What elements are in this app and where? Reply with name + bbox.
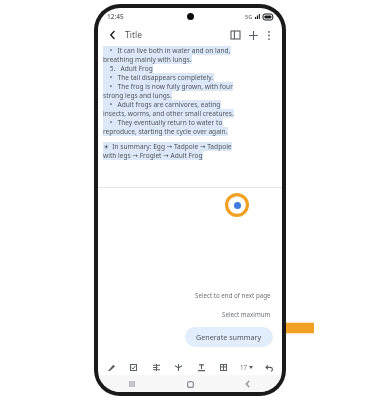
staticText: 17 [240, 363, 248, 371]
staticText: strong legs and lungs. [103, 91, 172, 100]
staticText: Generate summary [196, 332, 262, 342]
button[interactable]: Checklist [126, 360, 140, 374]
staticText: breathing mainly with lungs. [103, 55, 192, 64]
staticText: insects, worms, and other small creature… [103, 109, 234, 118]
staticText: Select to end of next page [195, 291, 271, 299]
button[interactable]: Insert [171, 360, 185, 374]
staticText: Select maximum [222, 310, 271, 318]
button[interactable]: Draw [104, 360, 118, 374]
button[interactable]: Select to end of next page [193, 289, 273, 301]
staticText: with legs → Froglet → Adult Frog [103, 151, 203, 160]
staticText: • The tail disappears completely. [103, 73, 214, 82]
button[interactable]: Table [216, 360, 230, 374]
staticText: • They eventually return to water to [103, 118, 223, 127]
button[interactable]: Back [104, 26, 122, 44]
staticText: reproduce, starting the cycle over again… [103, 127, 228, 136]
other: Pointer to Generate summary [268, 316, 314, 340]
button[interactable]: Back [240, 376, 256, 392]
staticText: • The frog is now fully grown, with four [103, 82, 233, 91]
button[interactable]: 17 [239, 363, 254, 371]
button[interactable]: Split view [226, 26, 244, 44]
button[interactable]: Text format [194, 360, 208, 374]
staticText: 12:45 [107, 12, 124, 21]
staticText: • Adult frogs are carnivores, eating [103, 100, 221, 109]
staticText: 5. Adult Frog [103, 64, 153, 73]
staticText: • It can live both in water and on land, [103, 46, 231, 55]
button[interactable]: Undo [262, 360, 276, 374]
button[interactable]: Recents [124, 376, 140, 392]
button[interactable]: Generate summary [185, 327, 273, 347]
staticText: Title [125, 29, 142, 41]
button[interactable]: Add [244, 26, 262, 44]
button[interactable]: Format list [149, 360, 163, 374]
button[interactable]: More options [262, 28, 276, 42]
button[interactable]: Select maximum [220, 308, 273, 320]
staticText: 5G [245, 13, 253, 20]
staticText: ☀ In summary: Egg → Tadpole → Tadpole [103, 142, 232, 151]
button[interactable]: Home [182, 376, 198, 392]
